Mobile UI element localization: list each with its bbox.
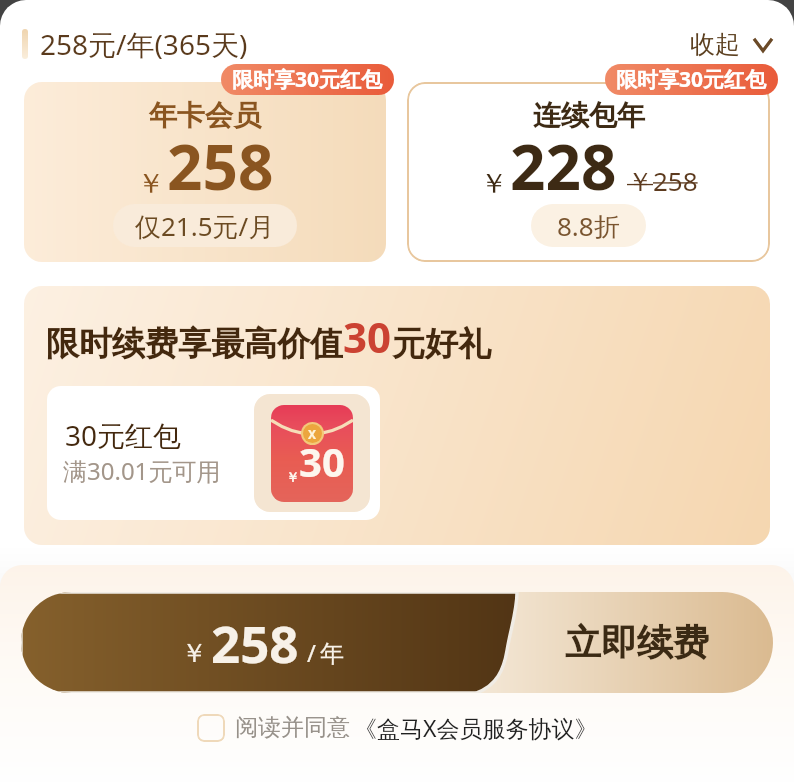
staticText: 30元红包 — [65, 416, 182, 454]
staticText: ￥ — [137, 166, 165, 201]
button[interactable]: 连续包年 — [407, 82, 770, 262]
staticText: / — [307, 636, 316, 669]
staticText: 30 — [299, 434, 345, 488]
staticText: ￥ — [480, 166, 508, 201]
staticText: X — [308, 426, 317, 442]
staticText: 258 — [167, 124, 274, 208]
staticText: 年卡会员 — [149, 98, 261, 133]
staticText: 258元/年(365天) — [40, 25, 248, 63]
staticText: ￥ — [286, 469, 299, 485]
staticText: 228 — [510, 124, 617, 208]
staticText: 258 — [211, 608, 299, 677]
button[interactable]: ￥ — [21, 592, 773, 693]
staticText: 8.8折 — [557, 208, 620, 244]
button[interactable]: 30元红包 — [47, 386, 380, 520]
button[interactable]: 年卡会员 — [24, 82, 386, 262]
staticText: 立即续费 — [565, 620, 709, 665]
staticText: 仅21.5元/月 — [135, 208, 275, 244]
staticText: 满30.01元可用 — [63, 454, 221, 487]
button[interactable]: 收起 — [690, 29, 772, 60]
staticText: 限时享30元红包 — [616, 65, 767, 94]
staticText: 年 — [320, 639, 344, 669]
staticText: 30 — [343, 308, 392, 365]
staticText: 元好礼 — [392, 323, 491, 365]
staticText: 阅读并同意 — [235, 713, 350, 742]
staticText: ￥258 — [627, 163, 698, 199]
staticText: ￥ — [181, 637, 207, 670]
staticText: 连续包年 — [533, 98, 645, 133]
staticText: 《盒马X会员服务协议》 — [354, 712, 598, 743]
staticText: 限时享30元红包 — [232, 65, 383, 94]
staticText: 收起 — [690, 29, 740, 60]
button[interactable]: 阅读并同意 — [197, 712, 598, 743]
staticText: 限时续费享最高价值 — [46, 323, 343, 365]
other: Collapse — [754, 32, 772, 58]
